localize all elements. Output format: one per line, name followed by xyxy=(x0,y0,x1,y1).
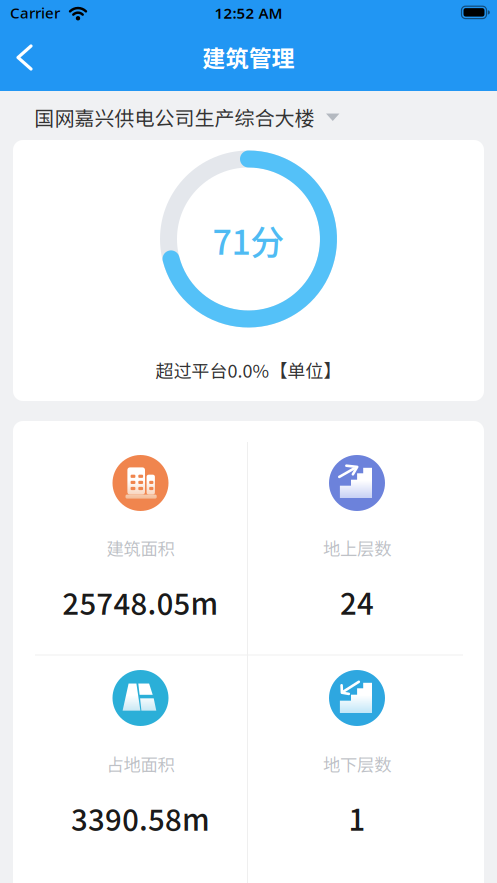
staticText: 24 xyxy=(340,581,374,623)
staticText: 12:52 AM xyxy=(214,3,282,23)
button[interactable]: 国网嘉兴供电公司生产综合大楼 xyxy=(0,91,497,140)
staticText: 建筑管理 xyxy=(202,40,294,74)
staticText: 3390.58m xyxy=(71,797,210,839)
staticText: 1 xyxy=(348,797,365,839)
staticText: 超过平台0.0%【单位】 xyxy=(155,357,341,383)
staticText: 地上层数 xyxy=(323,535,391,561)
staticText: 国网嘉兴供电公司生产综合大楼 xyxy=(34,102,314,131)
staticText: 建筑面积 xyxy=(106,535,174,561)
staticText: 71分 xyxy=(212,215,284,265)
staticText: Carrier xyxy=(10,2,60,23)
staticText: 占地面积 xyxy=(106,751,174,777)
staticText: 地下层数 xyxy=(323,751,391,777)
staticText: 25748.05m xyxy=(62,581,218,623)
button[interactable]: Back xyxy=(2,35,46,79)
